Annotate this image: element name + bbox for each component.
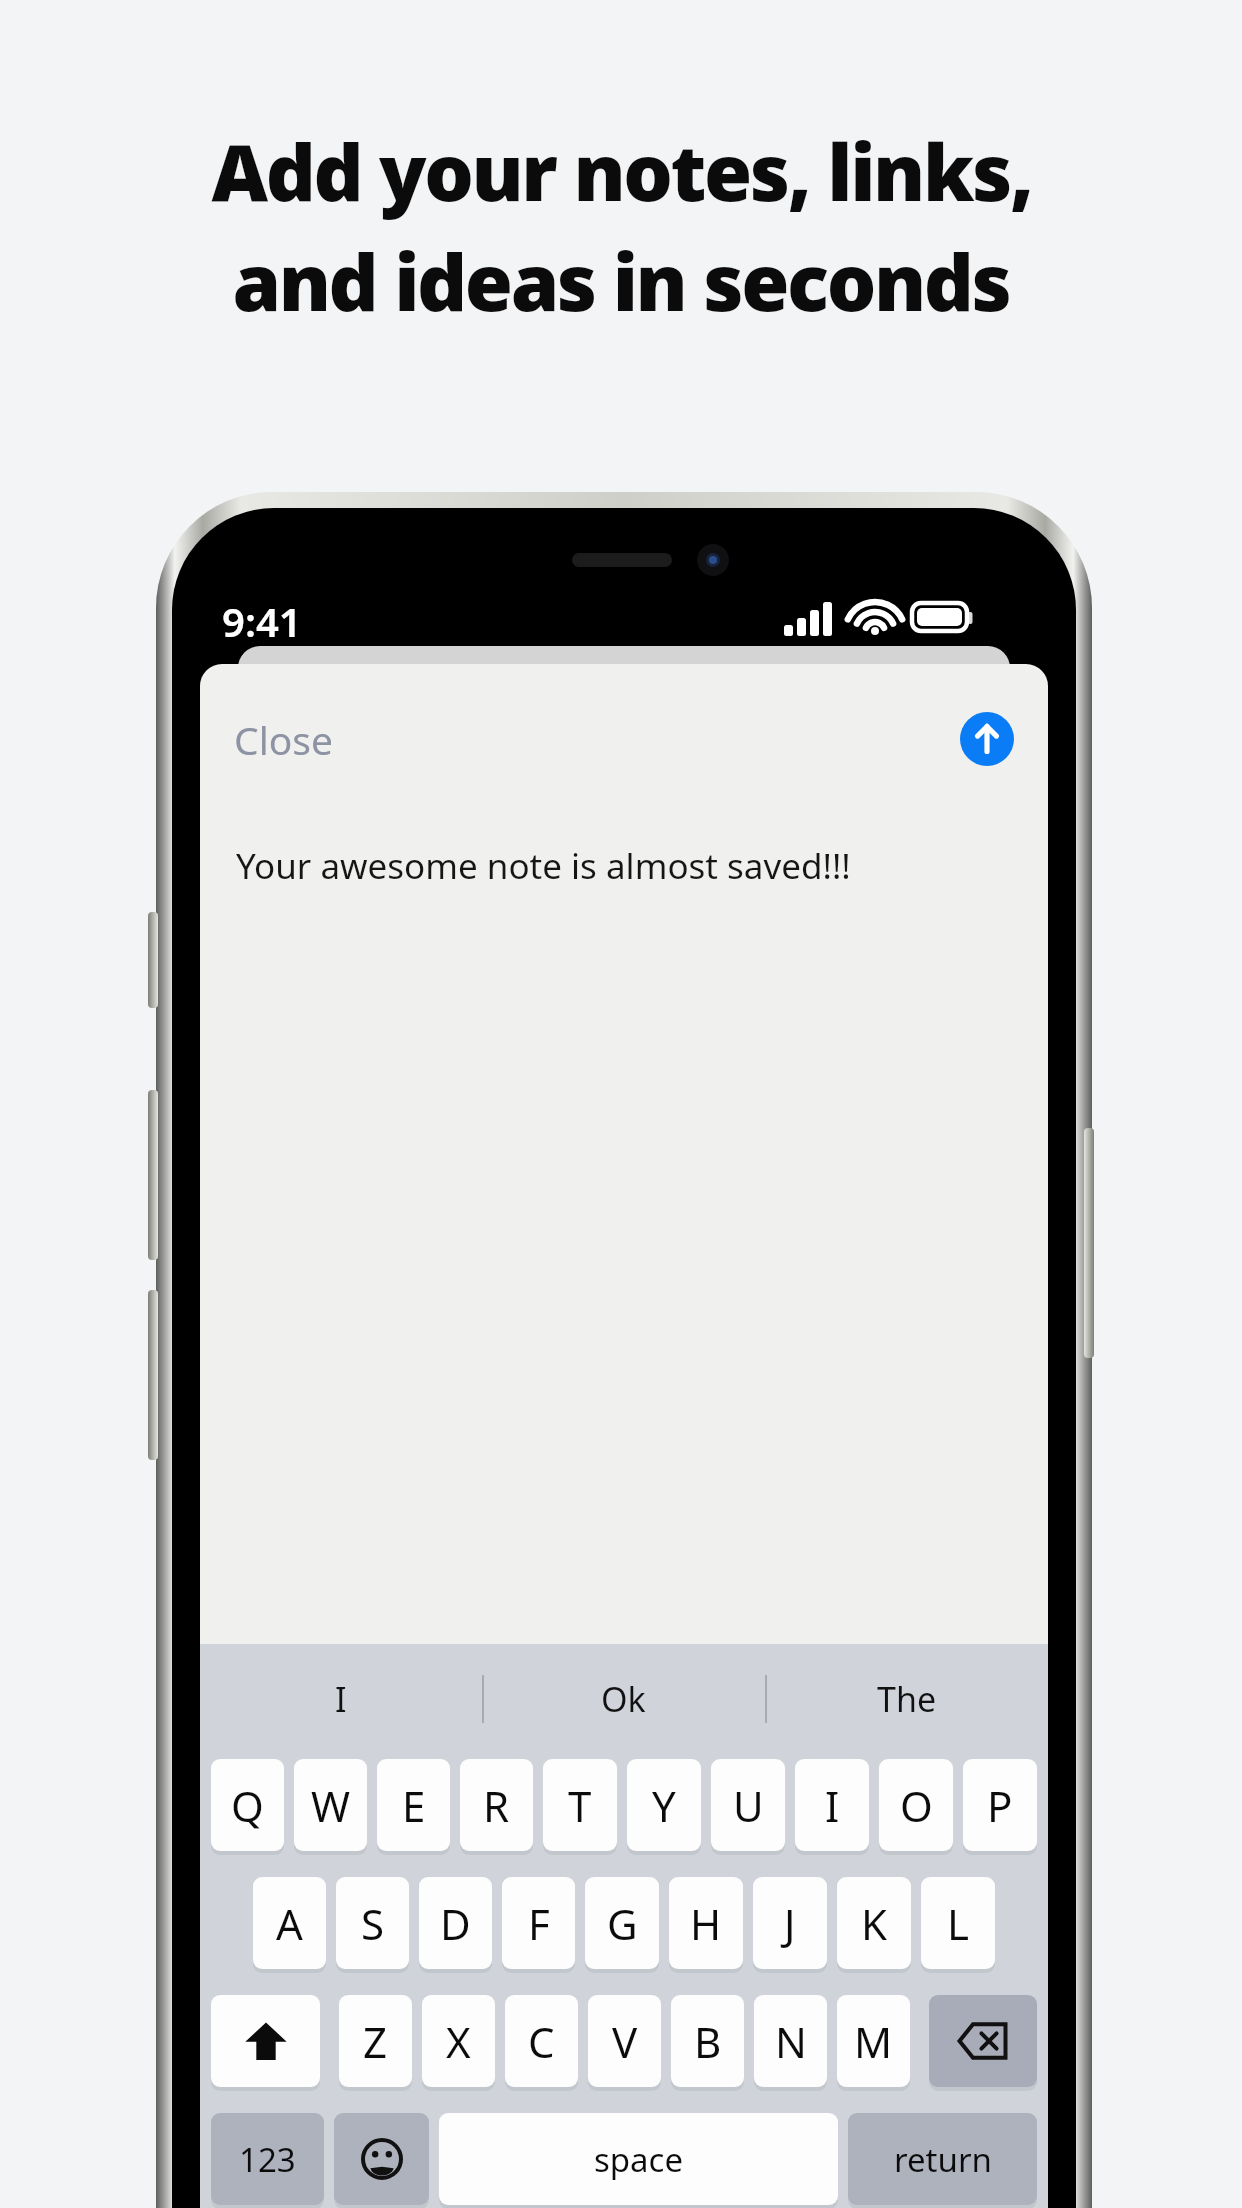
button[interactable]: Send note (960, 712, 1014, 766)
staticText: Close (234, 713, 333, 766)
button[interactable]: Close (218, 703, 349, 776)
button[interactable]: Q (211, 1759, 284, 1851)
button[interactable]: H (669, 1877, 743, 1969)
staticText: F (528, 1895, 550, 1952)
button[interactable]: B (671, 1995, 744, 2087)
staticText: M (854, 2013, 893, 2070)
button[interactable]: D (419, 1877, 492, 1969)
staticText: C (528, 2013, 555, 2070)
button[interactable]: return (848, 2113, 1037, 2205)
button[interactable]: Ok (482, 1644, 765, 1754)
staticText: U (733, 1777, 764, 1834)
staticText: W (311, 1777, 351, 1834)
button[interactable]: L (921, 1877, 995, 1969)
staticText: T (568, 1777, 592, 1834)
staticText: and ideas in seconds (232, 228, 1010, 334)
button[interactable]: P (963, 1759, 1037, 1851)
button[interactable]: C (505, 1995, 578, 2087)
button[interactable]: F (502, 1877, 575, 1969)
staticText: L (947, 1895, 970, 1952)
staticText: O (900, 1777, 933, 1834)
button[interactable]: X (422, 1995, 495, 2087)
button[interactable]: N (754, 1995, 827, 2087)
button[interactable]: K (837, 1877, 911, 1969)
button[interactable]: Backspace (929, 1995, 1037, 2087)
staticText: V (612, 2013, 638, 2070)
staticText: Q (231, 1777, 264, 1834)
staticText: P (987, 1777, 1013, 1834)
button[interactable]: A (253, 1877, 326, 1969)
staticText: G (607, 1895, 638, 1952)
button[interactable]: R (460, 1759, 533, 1851)
button[interactable]: U (711, 1759, 785, 1851)
staticText: Y (652, 1777, 676, 1834)
button[interactable]: J (753, 1877, 827, 1969)
button[interactable]: G (585, 1877, 659, 1969)
staticText: R (483, 1777, 510, 1834)
staticText: X (446, 2013, 471, 2070)
button[interactable]: S (336, 1877, 409, 1969)
button[interactable]: E (377, 1759, 450, 1851)
button[interactable]: Z (339, 1995, 412, 2087)
staticText: Your awesome note is almost saved!!! (236, 842, 851, 890)
staticText: space (594, 2137, 684, 2182)
button[interactable]: space (439, 2113, 838, 2205)
staticText: A (276, 1895, 303, 1952)
button[interactable]: W (294, 1759, 367, 1851)
staticText: I (825, 1777, 840, 1834)
staticText: K (861, 1895, 887, 1952)
staticText: B (694, 2013, 722, 2070)
staticText: N (775, 2013, 807, 2070)
staticText: Z (363, 2013, 388, 2070)
staticText: D (440, 1895, 471, 1952)
button[interactable]: Y (627, 1759, 701, 1851)
staticText: J (784, 1895, 796, 1952)
button[interactable]: Shift (211, 1995, 320, 2087)
staticText: I (335, 1676, 347, 1722)
button[interactable]: M (837, 1995, 910, 2087)
staticText: Add your notes, links, (211, 118, 1032, 224)
button[interactable]: Emoji (334, 2113, 429, 2205)
staticText: return (894, 2137, 992, 2182)
button[interactable]: V (588, 1995, 661, 2087)
staticText: 9:41 (222, 594, 302, 648)
staticText: 123 (239, 2137, 296, 2182)
button[interactable]: O (879, 1759, 953, 1851)
button[interactable]: The (765, 1644, 1048, 1754)
button[interactable]: I (200, 1644, 482, 1754)
staticText: H (690, 1895, 722, 1952)
staticText: S (361, 1895, 385, 1952)
button[interactable]: I (795, 1759, 869, 1851)
button[interactable]: 123 (211, 2113, 324, 2205)
staticText: E (402, 1777, 426, 1834)
button[interactable]: T (543, 1759, 617, 1851)
staticText: The (877, 1676, 937, 1722)
staticText: Ok (601, 1676, 646, 1722)
